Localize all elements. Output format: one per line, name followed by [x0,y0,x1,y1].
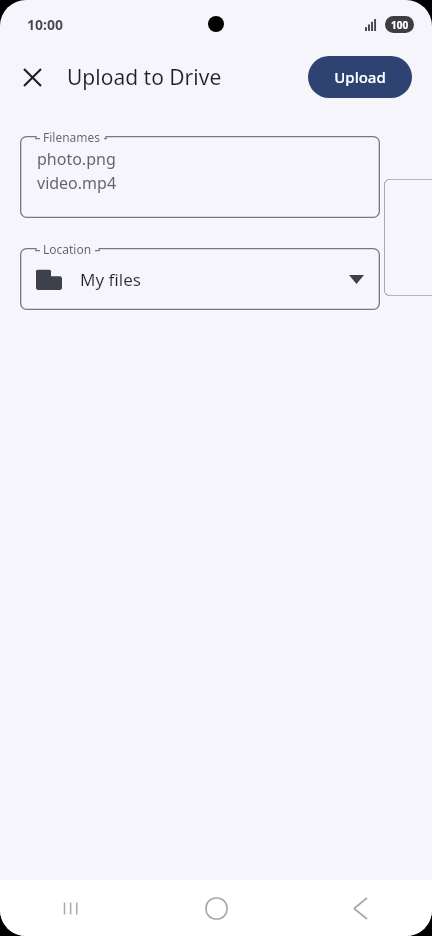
staticText: video.mp4 [37,172,117,194]
button[interactable]: Close [10,55,54,99]
staticText: 10:00 [27,15,63,34]
staticText: My files [80,268,141,291]
staticText: 100 [391,18,409,32]
button[interactable]: Recent apps [0,880,144,936]
button[interactable]: Back [288,880,432,936]
staticText: Upload [334,67,386,87]
staticText: Filenames [43,129,101,145]
button[interactable]: Upload [308,56,412,98]
staticText: Location [43,241,92,257]
button[interactable]: Select location [20,248,380,310]
staticText: photo.png [37,148,116,170]
staticText: Upload to Drive [67,63,222,92]
button[interactable]: Home [144,880,288,936]
